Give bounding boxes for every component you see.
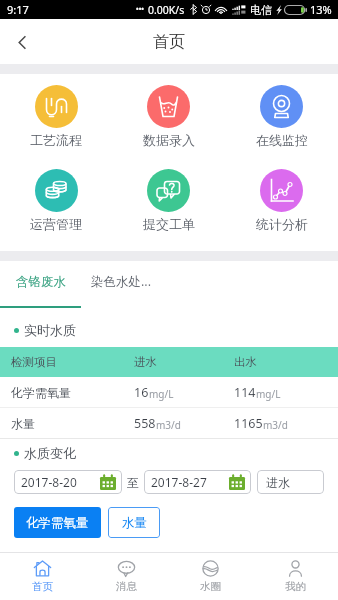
staticText: 染色水处... bbox=[91, 273, 152, 290]
button[interactable]: 在线监控 bbox=[225, 85, 338, 148]
button[interactable]: 水量 bbox=[108, 507, 160, 538]
staticText: 水圈 bbox=[200, 580, 221, 593]
staticText: 实时水质 bbox=[24, 322, 76, 338]
staticText: 运营管理 bbox=[30, 216, 82, 232]
button[interactable]: 数据录入 bbox=[112, 85, 225, 148]
button[interactable]: 化学需氧量 bbox=[14, 507, 101, 538]
staticText: 2017-8-27 bbox=[151, 474, 207, 490]
staticText: ••• bbox=[136, 5, 144, 15]
button[interactable]: 含铬废水 bbox=[0, 261, 81, 302]
staticText: m3/d bbox=[263, 418, 288, 432]
staticText: 化学需氧量 bbox=[11, 385, 134, 400]
staticText: 工艺流程 bbox=[30, 132, 82, 148]
staticText: 首页 bbox=[32, 580, 53, 593]
button[interactable]: 2017-8-20 bbox=[14, 470, 122, 494]
staticText: 13% bbox=[310, 2, 332, 17]
staticText: 化学需氧量 bbox=[26, 515, 89, 531]
staticText: 在线监控 bbox=[256, 132, 308, 148]
staticText: mg/L bbox=[149, 387, 174, 401]
staticText: mg/L bbox=[256, 387, 281, 401]
staticText: 9:17 bbox=[7, 2, 29, 17]
staticText: 114 bbox=[234, 384, 256, 401]
button[interactable]: 运营管理 bbox=[0, 169, 112, 232]
staticText: 至 bbox=[127, 475, 139, 490]
staticText: 首页 bbox=[153, 32, 185, 52]
staticText: 16 bbox=[134, 384, 149, 401]
button[interactable]: 进水 bbox=[257, 470, 324, 494]
staticText: 我的 bbox=[285, 580, 306, 593]
button[interactable]: 2017-8-27 bbox=[144, 470, 251, 494]
staticText: 提交工单 bbox=[143, 216, 195, 232]
staticText: m3/d bbox=[156, 418, 181, 432]
button[interactable]: 工艺流程 bbox=[0, 85, 112, 148]
button[interactable]: 染色水处... bbox=[81, 261, 162, 302]
staticText: 水量 bbox=[11, 416, 134, 431]
staticText: 558 bbox=[134, 415, 156, 432]
staticText: 出水 bbox=[234, 355, 257, 369]
staticText: 消息 bbox=[116, 580, 137, 593]
staticText: 1165 bbox=[234, 415, 263, 432]
button[interactable]: 消息 bbox=[84, 553, 168, 600]
button[interactable]: 提交工单 bbox=[112, 169, 225, 232]
staticText: 含铬废水 bbox=[16, 274, 66, 290]
staticText: 进水 bbox=[134, 355, 234, 369]
button[interactable]: 统计分析 bbox=[225, 169, 338, 232]
button[interactable]: Back bbox=[0, 20, 44, 64]
staticText: 水量 bbox=[122, 515, 147, 531]
staticText: 进水 bbox=[266, 475, 290, 490]
button[interactable]: 我的 bbox=[253, 553, 338, 600]
staticText: 检测项目 bbox=[11, 355, 134, 369]
button[interactable]: 水圈 bbox=[168, 553, 253, 600]
button[interactable]: 首页 bbox=[0, 553, 84, 600]
staticText: 水质变化 bbox=[24, 445, 76, 461]
staticText: 2017-8-20 bbox=[21, 474, 77, 490]
staticText: 0.00K/s bbox=[148, 3, 185, 17]
staticText: 电信 bbox=[250, 3, 272, 17]
staticText: 统计分析 bbox=[256, 216, 308, 232]
staticText: 数据录入 bbox=[143, 132, 195, 148]
